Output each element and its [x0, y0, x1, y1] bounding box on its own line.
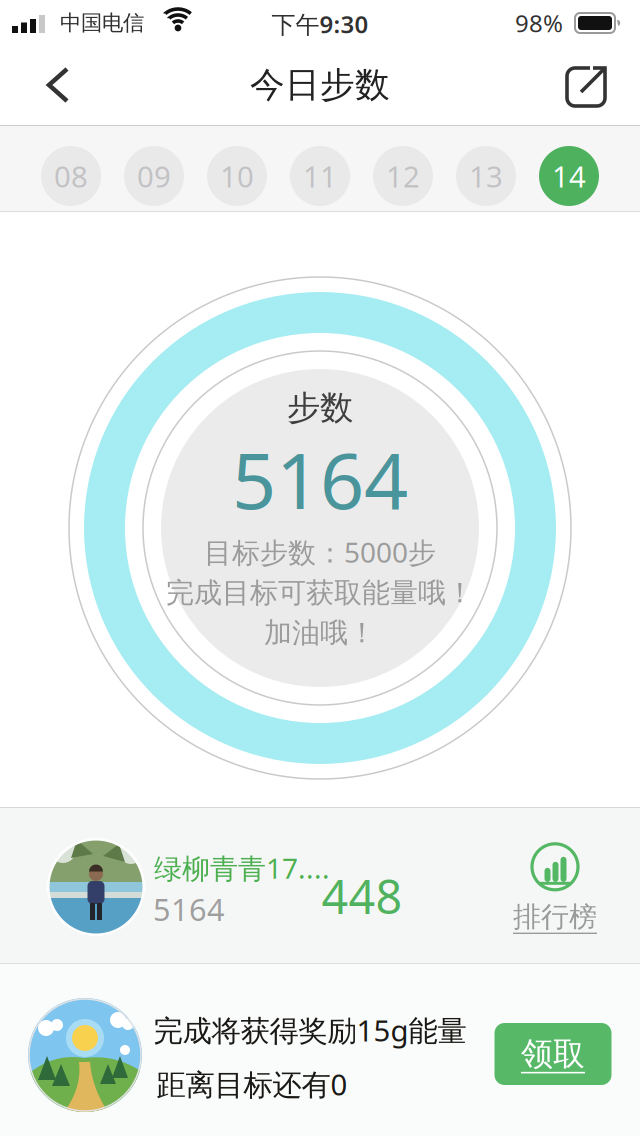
staticText: 完成将获得奖励15g能量 [153, 1010, 466, 1049]
staticText: 绿柳青青17.... [154, 849, 330, 887]
staticText: 14 [552, 156, 586, 195]
staticText: 目标步数：5000步 [204, 533, 436, 571]
button[interactable]: 08 [41, 146, 101, 206]
staticText: 98% [515, 7, 563, 39]
button[interactable]: 09 [124, 146, 184, 206]
staticText: 步数 [287, 387, 353, 428]
button[interactable]: 13 [456, 146, 516, 206]
button[interactable]: 11 [290, 146, 350, 206]
button[interactable]: 12 [373, 146, 433, 206]
button[interactable]: 10 [207, 146, 267, 206]
button[interactable]: 14 [539, 146, 599, 206]
staticText: 加油哦！ [264, 616, 376, 650]
staticText: 领取 [521, 1034, 585, 1074]
staticText: 排行榜 [513, 900, 597, 934]
staticText: 下午9:30 [271, 8, 368, 40]
button[interactable]: 领取 [494, 1023, 611, 1085]
staticText: 11 [303, 156, 337, 195]
staticText: 10 [220, 156, 254, 195]
staticText: 完成目标可获取能量哦！ [166, 576, 474, 610]
button[interactable]: Share [565, 62, 611, 108]
staticText: 距离目标还有0 [156, 1064, 347, 1103]
staticText: 今日步数 [250, 64, 390, 106]
staticText: 08 [54, 156, 88, 195]
staticText: 12 [386, 156, 420, 195]
staticText: 中国电信 [60, 10, 144, 36]
button[interactable]: Back [37, 63, 81, 107]
staticText: 09 [137, 156, 171, 195]
staticText: 448 [321, 865, 402, 927]
button[interactable]: 排行榜 [513, 842, 597, 934]
staticText: 5164 [153, 889, 225, 929]
staticText: 5164 [232, 428, 408, 530]
staticText: 13 [469, 156, 503, 195]
